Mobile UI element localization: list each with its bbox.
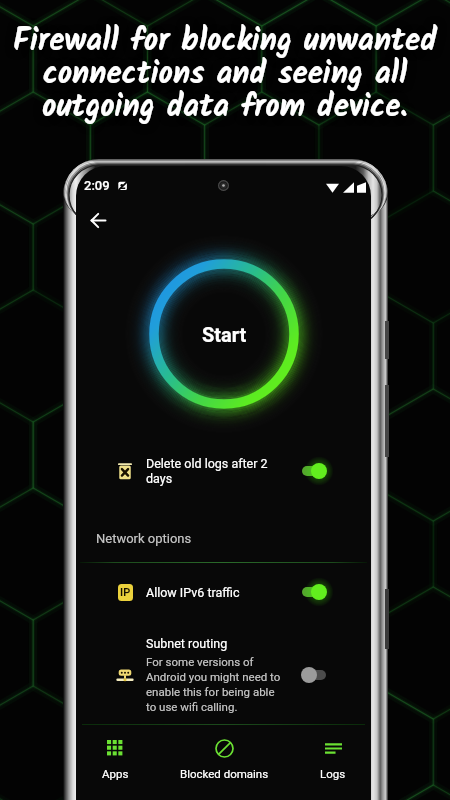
button[interactable]: Subnet routing [76, 621, 371, 720]
staticText: Firewall for blocking unwanted connectio… [13, 17, 437, 132]
button[interactable]: Apps [92, 725, 139, 786]
button[interactable]: Delete old logs after 2 days [76, 437, 371, 505]
staticText: Subnet routing [146, 636, 228, 651]
staticText: Start [202, 323, 247, 346]
button[interactable]: Toggle off [301, 667, 327, 683]
staticText: Apps [102, 767, 129, 780]
button[interactable]: Blocked domains [170, 725, 279, 786]
button[interactable]: IP [76, 563, 371, 621]
button[interactable]: Back [83, 205, 113, 235]
staticText: Allow IPv6 traffic [146, 585, 295, 600]
button[interactable]: Toggle on [301, 463, 327, 479]
staticText: For some versions of Android you might n… [146, 655, 281, 714]
staticText: Network options [96, 531, 192, 546]
staticText: IP [120, 586, 131, 599]
button[interactable]: Start [169, 279, 279, 389]
staticText: Logs [320, 767, 346, 780]
staticText: Delete old logs after 2 days [146, 456, 295, 486]
button[interactable]: Toggle on [301, 584, 327, 600]
button[interactable]: Logs [310, 725, 356, 786]
staticText: Blocked domains [180, 767, 269, 780]
staticText: 2:09 [84, 178, 110, 193]
